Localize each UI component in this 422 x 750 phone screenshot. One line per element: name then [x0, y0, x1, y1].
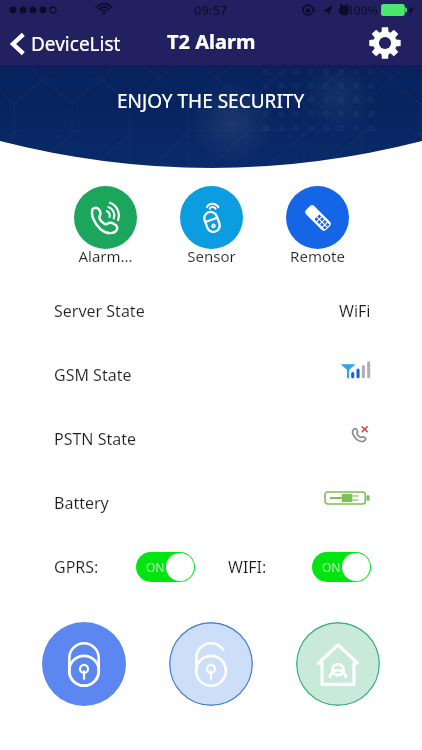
staticText: GPRS: [54, 556, 99, 578]
staticText: Battery [54, 492, 109, 514]
button[interactable]: DeviceList [0, 31, 131, 65]
button[interactable]: Remote [286, 186, 349, 269]
staticText: GSM State [54, 364, 132, 386]
staticText: Sensor [187, 246, 236, 266]
staticText: 100% [347, 2, 378, 18]
button[interactable]: ON [136, 552, 195, 582]
button[interactable]: Server State [0, 279, 422, 343]
staticText: DeviceList [31, 31, 121, 57]
staticText: WiFi [339, 300, 371, 322]
staticText: PSTN State [54, 428, 137, 450]
staticText: Alarm... [78, 246, 133, 266]
button[interactable]: ON [312, 552, 371, 582]
staticText: ON [146, 559, 165, 575]
button[interactable]: Sensor [180, 186, 243, 269]
staticText: T2 Alarm [167, 28, 256, 55]
staticText: Remote [290, 246, 345, 266]
button[interactable]: PSTN State [0, 407, 422, 471]
button[interactable]: Disarm [169, 622, 253, 706]
staticText: ENJOY THE SECURITY [117, 88, 305, 114]
staticText: 09:57 [194, 1, 228, 19]
button[interactable]: Battery [0, 471, 422, 535]
button[interactable]: GSM State [0, 343, 422, 407]
button[interactable]: Settings [369, 27, 401, 59]
button[interactable]: Home mode [296, 622, 380, 706]
staticText: WIFI: [228, 556, 267, 578]
staticText: ON [322, 559, 341, 575]
button[interactable]: Arm away [42, 622, 126, 706]
staticText: Server State [54, 300, 145, 322]
button[interactable]: Alarm... [74, 186, 137, 269]
